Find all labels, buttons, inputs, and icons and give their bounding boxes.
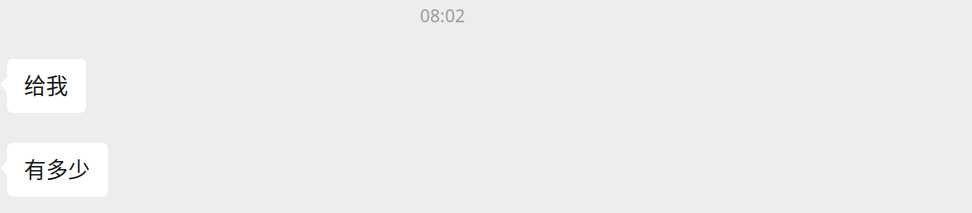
button[interactable]: 给我 — [0, 59, 86, 113]
staticText: 给我 — [24, 68, 68, 100]
staticText: 08:02 — [420, 4, 465, 27]
staticText: 有多少 — [24, 152, 90, 184]
button[interactable]: 有多少 — [0, 143, 108, 197]
